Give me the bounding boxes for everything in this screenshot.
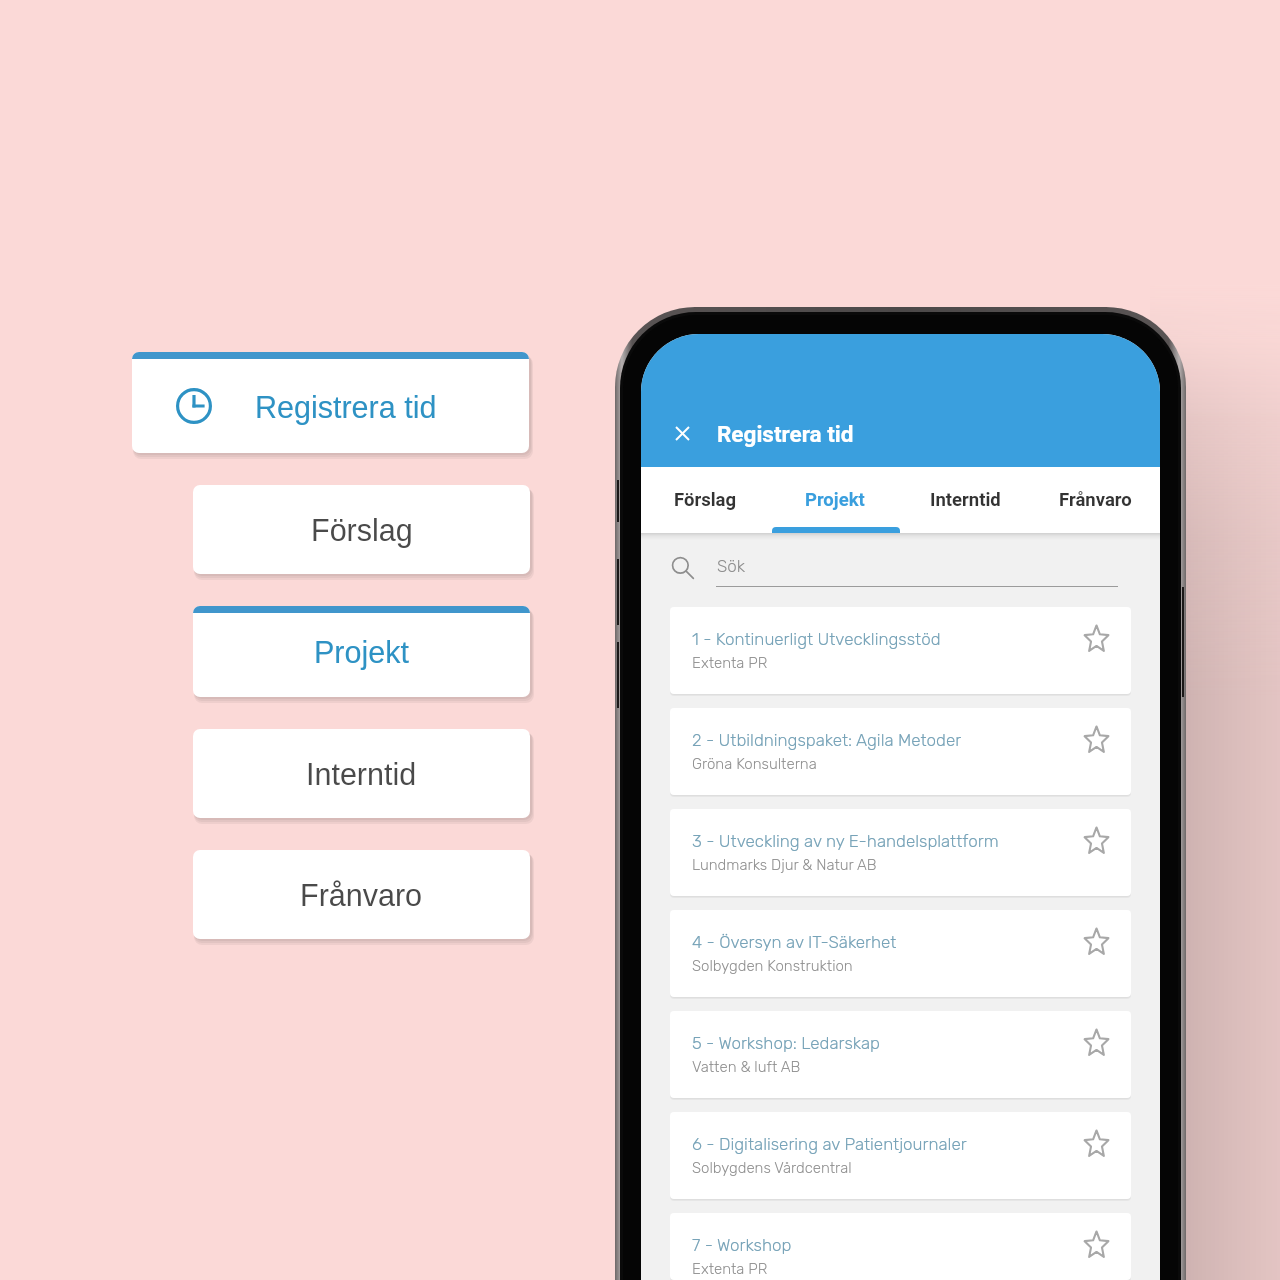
staticText: Extenta PR xyxy=(692,1260,768,1278)
staticText: Gröna Konsulterna xyxy=(692,755,817,773)
button[interactable]: Frånvaro xyxy=(193,850,530,939)
button[interactable]: Förslag xyxy=(641,467,770,533)
staticText: Frånvaro xyxy=(300,878,423,912)
button[interactable]: Favorite xyxy=(1072,1221,1120,1269)
button[interactable]: Förslag xyxy=(193,485,530,574)
staticText: Projekt xyxy=(314,635,409,669)
button[interactable]: Search xyxy=(664,549,702,587)
button[interactable]: Favorite xyxy=(1072,615,1120,663)
staticText: 4 - Översyn av IT-Säkerhet xyxy=(692,932,897,952)
staticText: Vatten & luft AB xyxy=(692,1058,801,1076)
button[interactable]: 1 - Kontinuerligt Utvecklingsstöd xyxy=(670,607,1131,694)
button[interactable]: 7 - Workshop xyxy=(670,1213,1131,1280)
button[interactable]: 6 - Digitalisering av Patientjournaler xyxy=(670,1112,1131,1199)
staticText: Projekt xyxy=(805,489,865,511)
staticText: 7 - Workshop xyxy=(692,1235,792,1255)
button[interactable]: Close xyxy=(664,415,700,451)
staticText: Interntid xyxy=(306,757,417,791)
staticText: Registrera tid xyxy=(255,390,437,424)
button[interactable]: Projekt xyxy=(193,606,530,697)
button[interactable]: Interntid xyxy=(193,729,530,818)
staticText: 2 - Utbildningspaket: Agila Metoder xyxy=(692,730,962,750)
button[interactable]: 3 - Utveckling av ny E-handelsplattform xyxy=(670,809,1131,896)
staticText: 6 - Digitalisering av Patientjournaler xyxy=(692,1134,967,1154)
button[interactable]: Registrera tid xyxy=(132,352,529,453)
staticText: 3 - Utveckling av ny E-handelsplattform xyxy=(692,831,999,851)
staticText: Förslag xyxy=(311,513,413,547)
staticText: Extenta PR xyxy=(692,654,768,672)
staticText: Registrera tid xyxy=(717,421,854,447)
button[interactable]: 5 - Workshop: Ledarskap xyxy=(670,1011,1131,1098)
button[interactable]: Frånvaro xyxy=(1030,467,1160,533)
button[interactable]: Interntid xyxy=(900,467,1030,533)
button[interactable]: Projekt xyxy=(770,467,900,533)
staticText: 5 - Workshop: Ledarskap xyxy=(692,1033,880,1053)
button[interactable]: Favorite xyxy=(1072,716,1120,764)
staticText: Solbygden Konstruktion xyxy=(692,957,853,975)
button[interactable]: Favorite xyxy=(1072,1120,1120,1168)
staticText: 1 - Kontinuerligt Utvecklingsstöd xyxy=(692,629,941,649)
staticText: Sök xyxy=(717,556,746,576)
button[interactable]: Favorite xyxy=(1072,918,1120,966)
staticText: Lundmarks Djur & Natur AB xyxy=(692,856,877,874)
staticText: Solbygdens Vårdcentral xyxy=(692,1159,852,1177)
button[interactable]: Favorite xyxy=(1072,1019,1120,1067)
button[interactable]: 2 - Utbildningspaket: Agila Metoder xyxy=(670,708,1131,795)
staticText: Frånvaro xyxy=(1059,489,1132,511)
staticText: Förslag xyxy=(674,489,737,511)
button[interactable]: 4 - Översyn av IT-Säkerhet xyxy=(670,910,1131,997)
staticText: Interntid xyxy=(930,489,1001,511)
button[interactable]: Favorite xyxy=(1072,817,1120,865)
